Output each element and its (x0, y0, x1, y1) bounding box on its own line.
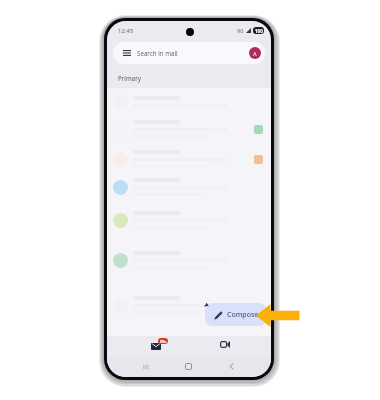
button[interactable]: Open navigation menu (113, 42, 265, 64)
button[interactable] (107, 114, 271, 144)
staticText: Primary (118, 74, 141, 82)
button[interactable]: Recent apps (125, 356, 167, 377)
other: Open navigation menu (123, 50, 131, 56)
button[interactable]: Meet (209, 334, 241, 354)
button[interactable] (107, 200, 271, 240)
button[interactable] (107, 144, 271, 174)
button[interactable] (107, 240, 271, 280)
button[interactable] (107, 280, 271, 330)
button[interactable]: Mail (143, 334, 175, 354)
staticText: 90 (237, 27, 244, 34)
staticText: A (253, 50, 257, 57)
staticText: 100 (255, 28, 263, 34)
button[interactable] (107, 174, 271, 200)
button[interactable]: Back (210, 356, 253, 377)
button[interactable]: Account (249, 47, 261, 59)
button[interactable]: Home (167, 356, 210, 377)
staticText: Search in mail (137, 49, 178, 57)
staticText: 99+ (160, 339, 167, 344)
staticText: 12:45 (118, 27, 134, 35)
staticText: Compose (227, 310, 259, 320)
button[interactable]: Compose (205, 303, 266, 326)
